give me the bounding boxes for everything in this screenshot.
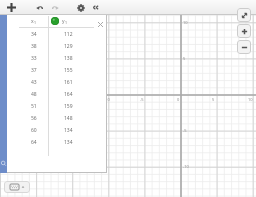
button[interactable]: Zoom out xyxy=(237,40,251,54)
staticText: 37 xyxy=(31,67,37,74)
staticText: 129 xyxy=(64,43,73,50)
button[interactable]: Collapse panel xyxy=(88,0,102,15)
staticText: 51 xyxy=(31,103,37,110)
staticText: 33 xyxy=(31,55,37,62)
staticText: 161 xyxy=(64,79,73,86)
staticText: 112 xyxy=(64,31,73,38)
staticText: -10 xyxy=(183,164,189,169)
button[interactable]: Add expression xyxy=(2,0,20,15)
staticText: 10 xyxy=(248,97,253,102)
staticText: 5 xyxy=(212,97,215,102)
staticText: 0 xyxy=(177,97,180,102)
staticText: 48 xyxy=(31,91,37,98)
staticText: -10 xyxy=(104,97,110,102)
button[interactable]: Remove table xyxy=(95,19,105,29)
staticText: 155 xyxy=(64,67,73,74)
button[interactable]: 51 xyxy=(7,100,107,112)
button[interactable]: Settings xyxy=(74,0,88,15)
staticText: 159 xyxy=(64,103,73,110)
staticText: 56 xyxy=(31,115,37,122)
staticText: 10 xyxy=(183,20,188,25)
staticText: 148 xyxy=(64,115,73,122)
staticText: 34 xyxy=(31,31,37,38)
staticText: x xyxy=(31,18,34,25)
button[interactable]: 64 xyxy=(7,136,107,148)
staticText: 138 xyxy=(64,55,73,62)
staticText: 164 xyxy=(64,91,73,98)
staticText: 1 xyxy=(65,20,68,25)
staticText: 134 xyxy=(64,139,73,146)
staticText: 43 xyxy=(31,79,37,86)
button[interactable]: Undo xyxy=(33,0,47,15)
staticText: 134 xyxy=(64,127,73,134)
button[interactable]: Zoom in xyxy=(237,24,251,38)
staticText: 1 xyxy=(34,20,37,25)
button[interactable]: 34 xyxy=(7,28,107,40)
button[interactable]: 60 xyxy=(7,124,107,136)
button[interactable]: Expression handle xyxy=(0,15,7,173)
staticText: 5 xyxy=(183,56,186,61)
button[interactable]: 48 xyxy=(7,88,107,100)
button[interactable]: 33 xyxy=(7,52,107,64)
button[interactable]: 56 xyxy=(7,112,107,124)
staticText: 60 xyxy=(31,127,37,134)
staticText: -5 xyxy=(140,97,144,102)
button[interactable]: Redo xyxy=(48,0,62,15)
button[interactable]: Toggle plot colour xyxy=(51,17,59,25)
button[interactable]: 43 xyxy=(7,76,107,88)
staticText: 64 xyxy=(31,139,37,146)
button[interactable]: Show keypad xyxy=(4,181,30,193)
button[interactable]: Zoom to fit xyxy=(237,8,251,22)
staticText: -5 xyxy=(183,128,187,133)
button[interactable]: 37 xyxy=(7,64,107,76)
staticText: 38 xyxy=(31,43,37,50)
button[interactable]: x xyxy=(7,15,107,27)
staticText: y xyxy=(62,18,65,25)
button[interactable]: 38 xyxy=(7,40,107,52)
